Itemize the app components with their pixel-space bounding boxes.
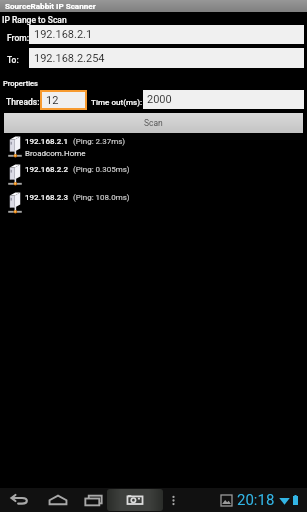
staticText: (Ping: 108.0ms) bbox=[73, 193, 130, 202]
staticText: IP Range to Scan bbox=[2, 15, 67, 25]
staticText: 192.168.2.2 bbox=[25, 165, 69, 174]
staticText: Broadcom.Home bbox=[25, 149, 86, 158]
button[interactable]: Back bbox=[0, 488, 38, 512]
button[interactable]: 192.168.2.1 bbox=[29, 25, 304, 44]
staticText: SourceRabbit IP Scanner bbox=[5, 1, 96, 10]
staticText: Scan bbox=[144, 118, 163, 128]
staticText: To: bbox=[7, 55, 19, 65]
staticText: 20:18 bbox=[237, 491, 275, 509]
button[interactable]: Home bbox=[38, 488, 78, 512]
button[interactable]: 192.168.2.254 bbox=[29, 48, 304, 68]
staticText: Time out(ms): bbox=[91, 97, 143, 106]
button[interactable]: 192.168.2.3 bbox=[0, 189, 307, 217]
staticText: 192.168.2.3 bbox=[25, 193, 69, 202]
staticText: 192.168.2.254 bbox=[34, 52, 105, 65]
staticText: 192.168.2.1 bbox=[25, 137, 69, 146]
staticText: Properties bbox=[3, 79, 38, 88]
button[interactable]: 192.168.2.1 bbox=[0, 133, 307, 161]
button[interactable]: Screenshot bbox=[108, 488, 162, 512]
button[interactable]: More options bbox=[162, 488, 184, 512]
button[interactable]: 192.168.2.2 bbox=[0, 161, 307, 189]
staticText: (Ping: 2.37ms) bbox=[73, 137, 126, 146]
button[interactable]: 2000 bbox=[143, 90, 304, 109]
staticText: (Ping: 0.305ms) bbox=[73, 165, 130, 174]
staticText: 12 bbox=[46, 94, 59, 107]
button[interactable]: Scan bbox=[4, 113, 303, 133]
staticText: Threads: bbox=[6, 97, 40, 107]
button[interactable]: Recent apps bbox=[78, 488, 108, 512]
staticText: From: bbox=[7, 33, 29, 43]
staticText: 2000 bbox=[147, 93, 172, 106]
button[interactable]: 12 bbox=[42, 92, 85, 108]
staticText: 192.168.2.1 bbox=[34, 28, 93, 41]
